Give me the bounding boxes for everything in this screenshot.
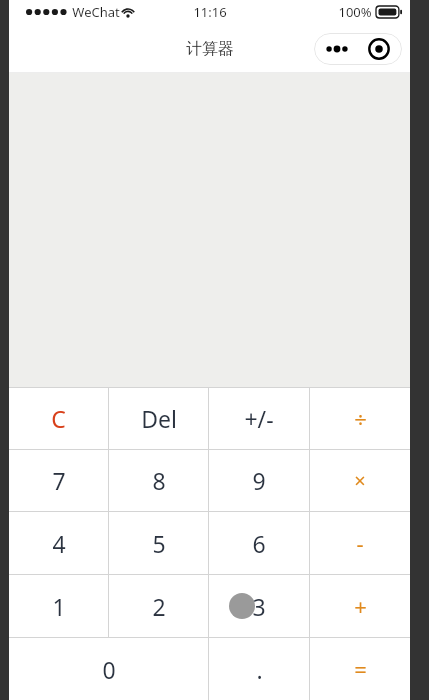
staticText: 3 [252,591,266,622]
button[interactable]: . [209,638,309,700]
button[interactable]: 4 [9,512,108,574]
button[interactable]: ÷ [310,388,410,449]
staticText: 2 [152,591,166,622]
button[interactable]: Close [359,34,399,64]
staticText: 11:16 [193,3,227,21]
button[interactable]: 6 [209,512,309,574]
staticText: = [354,654,367,684]
staticText: . [256,654,263,685]
button[interactable]: 8 [109,450,208,511]
button[interactable]: × [310,450,410,511]
staticText: 8 [152,465,166,496]
staticText: 4 [52,528,66,559]
staticText: Del [141,403,177,434]
button[interactable]: 5 [109,512,208,574]
staticText: 1 [52,591,66,622]
button[interactable]: 2 [109,575,208,637]
button[interactable]: Del [109,388,208,449]
button[interactable]: 9 [209,450,309,511]
button[interactable]: 1 [9,575,108,637]
button[interactable]: + [310,575,410,637]
staticText: 计算器 [186,39,234,59]
button[interactable]: = [310,638,410,700]
button[interactable]: 7 [9,450,108,511]
staticText: - [356,528,364,558]
staticText: C [51,403,66,434]
button[interactable]: More [317,34,357,64]
staticText: 6 [252,528,266,559]
staticText: 100% [338,3,372,21]
staticText: 9 [252,465,266,496]
button[interactable]: C [9,388,108,449]
staticText: 7 [52,465,66,496]
staticText: WeChat [72,3,120,21]
staticText: × [354,467,366,494]
staticText: ÷ [354,404,367,434]
button[interactable]: +/- [209,388,309,449]
staticText: 5 [152,528,166,559]
button[interactable]: 0 [9,638,208,700]
button[interactable]: - [310,512,410,574]
button[interactable]: 3 [209,575,309,637]
staticText: + [354,591,367,621]
staticText: +/- [244,403,274,434]
staticText: 0 [102,654,116,685]
